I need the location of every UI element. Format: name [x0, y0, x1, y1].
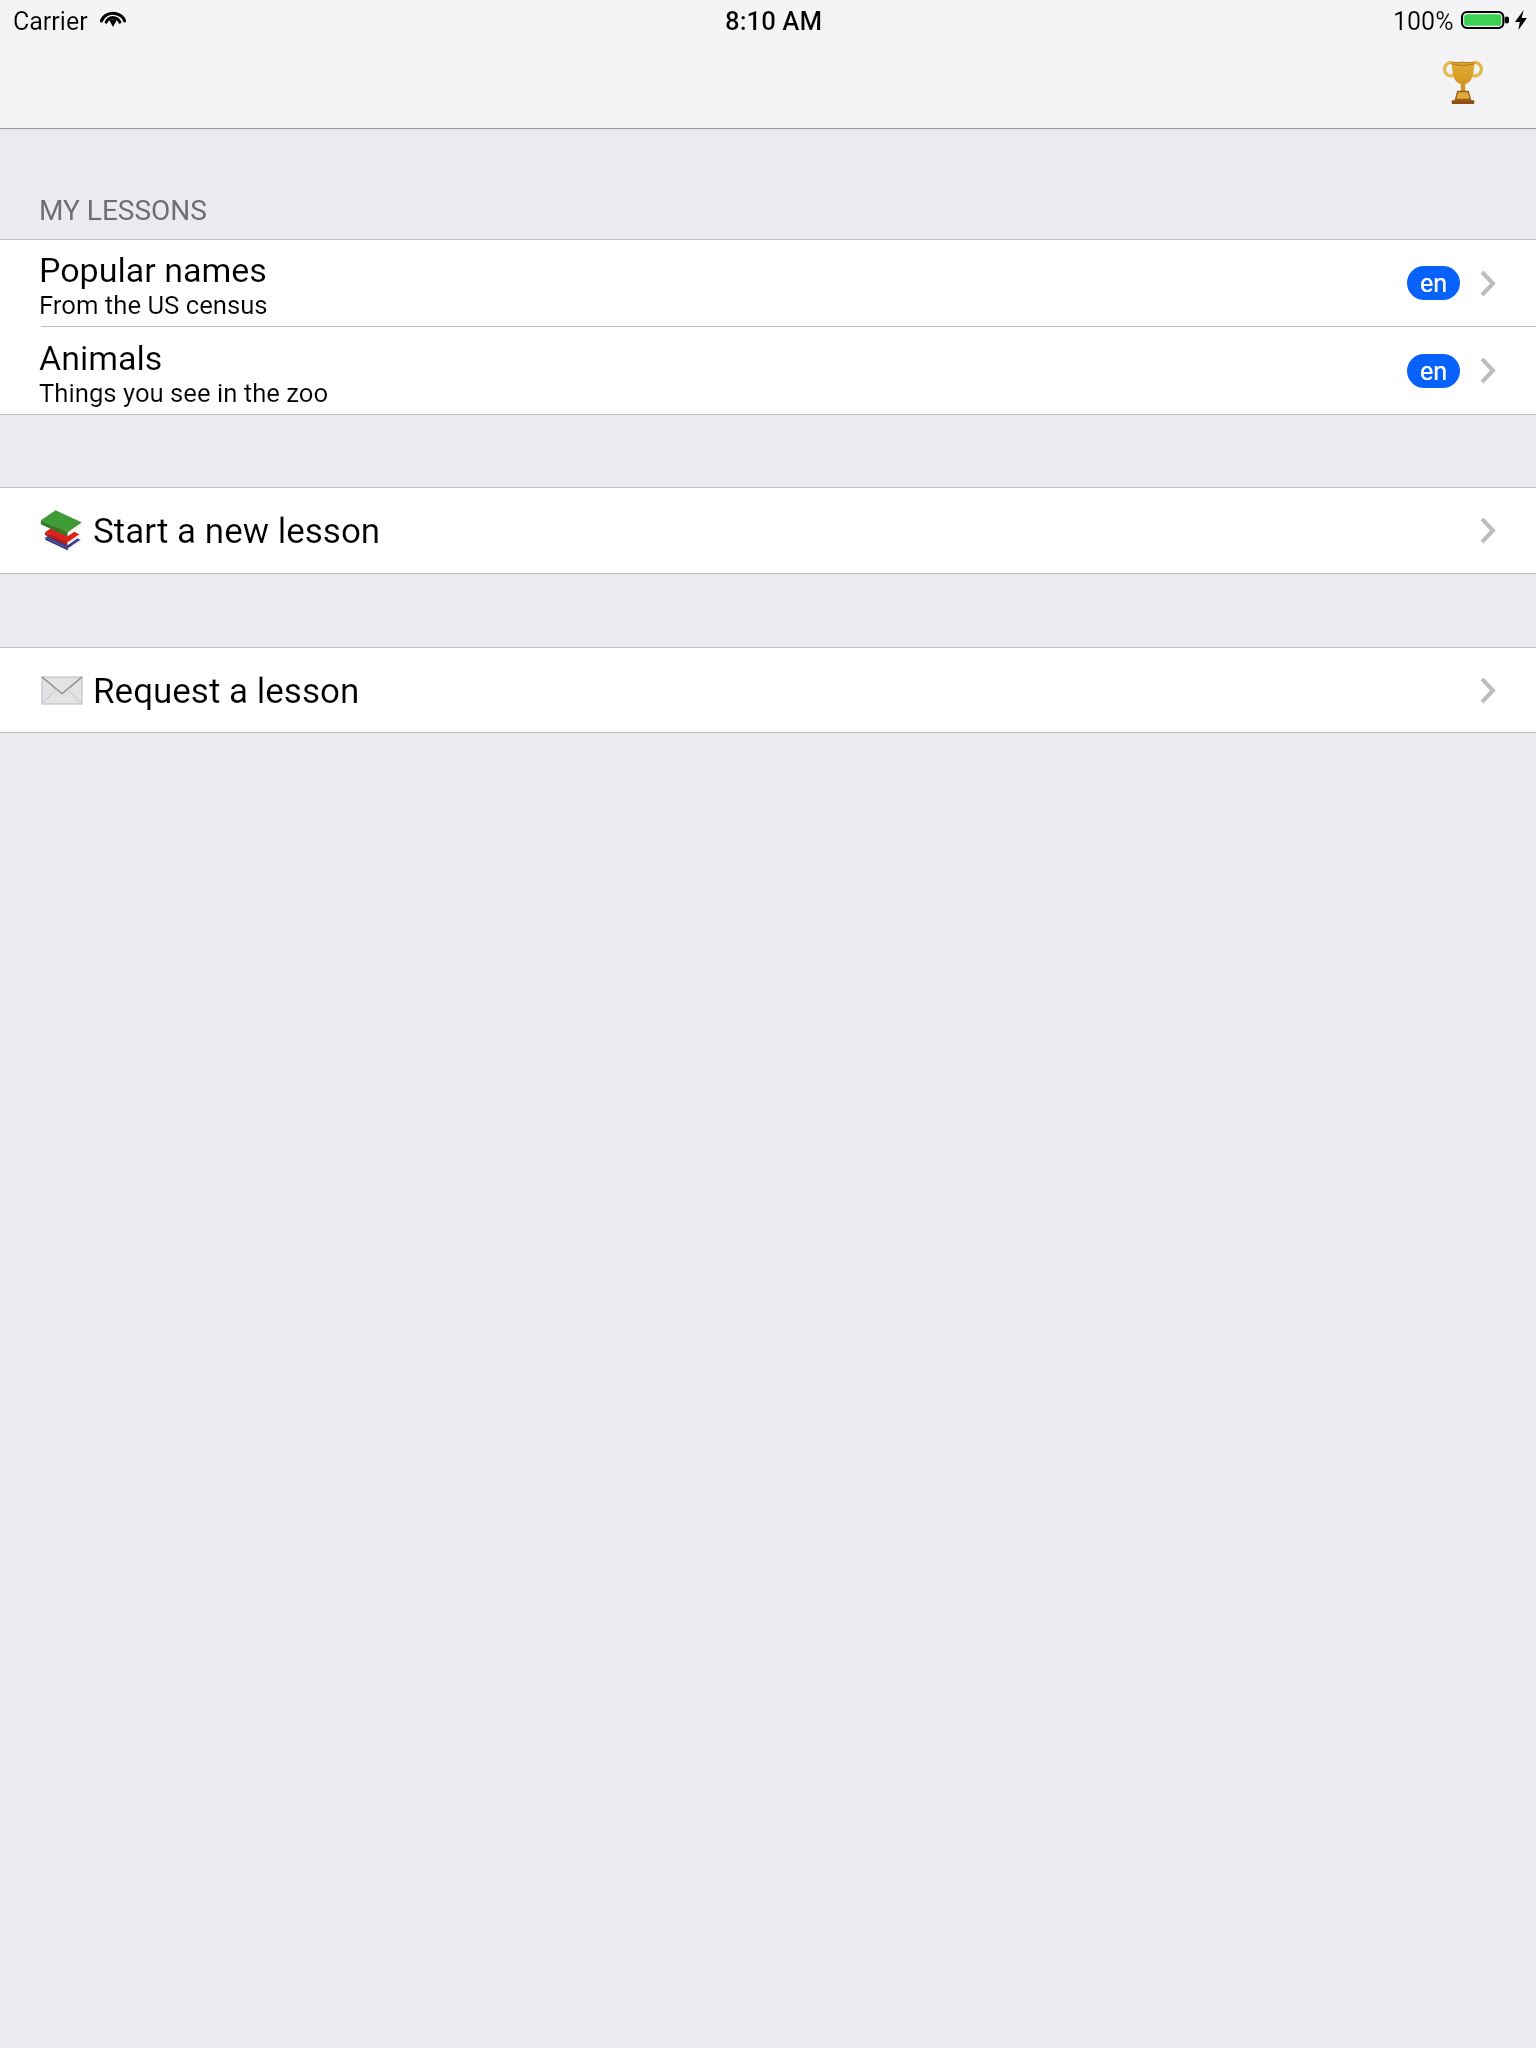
staticText: Animals [39, 338, 163, 378]
button[interactable]: Popular names [0, 240, 1536, 326]
staticText: Carrier [13, 7, 88, 36]
button[interactable]: Achievements [1426, 45, 1500, 119]
staticText: 100% [1393, 7, 1454, 36]
staticText: Request a lesson [93, 671, 360, 712]
staticText: Start a new lesson [93, 511, 381, 552]
staticText: 8:10 AM [725, 6, 823, 36]
staticText: Things you see in the zoo [39, 378, 329, 408]
staticText: From the US census [39, 290, 268, 320]
staticText: en [1420, 357, 1448, 386]
staticText: MY LESSONS [39, 194, 207, 227]
button[interactable]: Request a lesson [0, 648, 1536, 732]
staticText: en [1420, 269, 1448, 298]
button[interactable]: Animals [0, 327, 1536, 414]
staticText: Popular names [39, 250, 267, 290]
button[interactable]: Start a new lesson [0, 488, 1536, 573]
